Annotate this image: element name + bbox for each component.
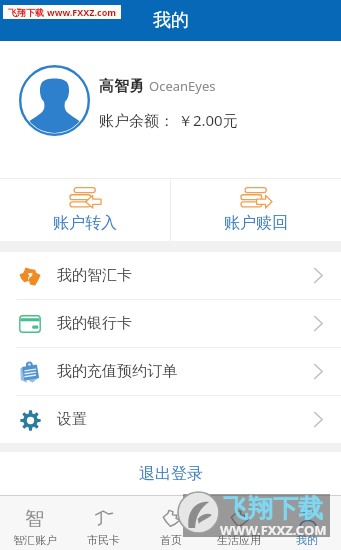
button[interactable]: 我的银行卡 [0, 300, 341, 347]
staticText: 我的 [153, 9, 189, 32]
staticText: 账户赎回 [224, 213, 288, 233]
staticText: 市民卡 [87, 533, 120, 547]
button[interactable]: 账户赎回 [171, 179, 341, 241]
button[interactable]: 设置 [0, 396, 341, 443]
button[interactable]: 首页 [137, 496, 205, 550]
staticText: 智汇账户 [13, 533, 57, 547]
staticText: 账户余额： ￥2.00元 [99, 110, 238, 130]
staticText: 我的充值预约订单 [57, 362, 177, 381]
button[interactable]: 市民卡 [69, 496, 137, 550]
staticText: www.FXXZ.com [47, 6, 117, 18]
staticText: 智 [25, 507, 44, 528]
staticText: 飞翔下载 [223, 493, 323, 524]
staticText: WWW.FXXZ.COM [220, 521, 327, 539]
staticText: 我的 [296, 533, 318, 547]
button[interactable]: 我的智汇卡 [0, 252, 341, 299]
staticText: 飞翔下载 [8, 7, 44, 18]
staticText: 生活应用 [217, 533, 261, 547]
staticText: 首页 [160, 533, 182, 547]
staticText: 设置 [57, 410, 87, 429]
staticText: 高智勇 [99, 77, 144, 96]
button[interactable]: 我的充值预约订单 [0, 348, 341, 395]
staticText: OceanEyes [149, 77, 216, 95]
button[interactable]: 智 [0, 496, 69, 550]
button[interactable]: 生活应用 [205, 496, 273, 550]
staticText: 我的智汇卡 [57, 266, 132, 285]
button[interactable]: 我的 [273, 496, 341, 550]
staticText: 账户转入 [53, 213, 117, 233]
button[interactable]: 退出登录 [0, 452, 341, 495]
button[interactable]: 账户转入 [0, 179, 170, 241]
staticText: 退出登录 [139, 464, 203, 484]
staticText: 我的银行卡 [57, 314, 132, 333]
